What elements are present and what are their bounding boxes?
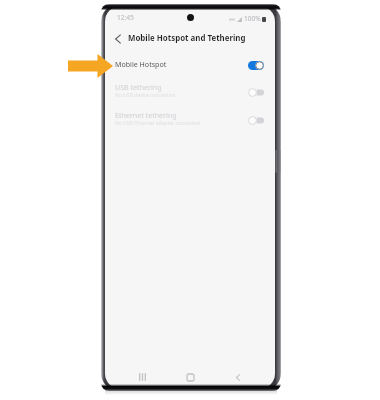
button[interactable]: USB tethering (105, 76, 275, 98)
button[interactable]: Back (112, 33, 123, 44)
staticText: No USB device connected (115, 92, 175, 99)
other: Pointer arrow (68, 54, 113, 78)
staticText: 12:45 (117, 13, 134, 22)
button[interactable]: Recent apps (134, 369, 150, 385)
staticText: USB tethering (115, 82, 162, 92)
staticText: 100% (244, 14, 261, 23)
button[interactable]: Mobile Hotspot (105, 53, 275, 71)
staticText: Ethernet tethering (115, 110, 177, 120)
button[interactable]: Back (230, 369, 246, 385)
staticText: No USB Ethernet adapter connected (115, 120, 200, 127)
button[interactable]: Switch off (248, 88, 264, 97)
button[interactable]: Switch off (248, 116, 264, 125)
staticText: Mobile Hotspot (115, 59, 167, 69)
button[interactable]: Switch on (248, 61, 264, 70)
button[interactable]: Ethernet tethering (105, 104, 275, 126)
button[interactable]: Home (182, 369, 198, 385)
staticText: Mobile Hotspot and Tethering (128, 33, 246, 44)
